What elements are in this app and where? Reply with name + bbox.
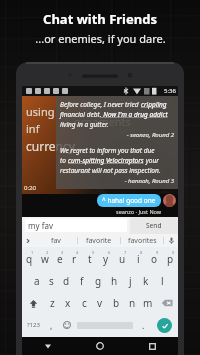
staticText: 8 xyxy=(140,250,143,255)
staticText: . xyxy=(142,319,145,331)
button[interactable]: fav xyxy=(34,234,77,247)
staticText: y xyxy=(103,252,109,266)
staticText: u xyxy=(119,252,126,266)
staticText: 0 xyxy=(172,250,175,255)
staticText: living in a gutter. xyxy=(60,120,109,129)
button[interactable]: s xyxy=(44,271,59,291)
button[interactable]: Back xyxy=(22,337,74,355)
staticText: b xyxy=(113,296,120,310)
button[interactable]: Profile photo xyxy=(163,194,176,207)
staticText: 4 xyxy=(76,250,79,255)
button[interactable]: e xyxy=(52,249,67,269)
staticText: 9 xyxy=(156,250,159,255)
staticText: 5 xyxy=(92,250,95,255)
staticText: h xyxy=(111,274,118,288)
button[interactable]: h xyxy=(106,271,122,291)
staticText: p xyxy=(167,252,174,266)
button[interactable]: u xyxy=(114,249,130,269)
button[interactable]: favorite xyxy=(78,234,120,247)
staticText: s xyxy=(49,274,54,288)
button[interactable]: c xyxy=(76,293,92,313)
staticText: crippling xyxy=(141,100,167,109)
staticText: financial debt xyxy=(60,110,100,119)
button[interactable]: t xyxy=(82,249,98,269)
staticText: , xyxy=(50,319,53,331)
button[interactable]: v xyxy=(92,293,108,313)
button[interactable]: . xyxy=(136,315,151,335)
staticText: ^ haha! good one xyxy=(102,196,156,205)
staticText: t xyxy=(88,252,92,266)
button[interactable]: f xyxy=(74,271,90,291)
staticText: currency xyxy=(26,138,75,154)
staticText: inf xyxy=(26,121,40,136)
button[interactable]: , xyxy=(44,315,59,335)
staticText: c xyxy=(82,296,87,310)
button[interactable]: Voice input xyxy=(164,234,178,247)
staticText: r xyxy=(72,252,77,266)
button[interactable]: Expand suggestions xyxy=(22,234,34,247)
staticText: 2 xyxy=(46,250,49,255)
staticText: Chat with Friends xyxy=(43,10,157,28)
button[interactable]: Home xyxy=(74,337,126,355)
staticText: w xyxy=(41,252,49,266)
staticText: z xyxy=(50,296,55,310)
button[interactable]: q xyxy=(22,249,37,269)
staticText: n xyxy=(129,296,136,310)
staticText: - hannah, Round 3 xyxy=(60,177,174,185)
button[interactable]: g xyxy=(90,271,106,291)
staticText: 5:36 xyxy=(164,87,176,95)
button[interactable]: Emoji xyxy=(59,315,74,335)
staticText: your xyxy=(144,156,159,165)
staticText: m xyxy=(143,296,153,310)
button[interactable]: Shift xyxy=(22,293,44,313)
button[interactable]: p xyxy=(162,249,178,269)
button[interactable]: i xyxy=(130,249,146,269)
staticText: - seanzo, Round 2 xyxy=(60,131,174,139)
staticText: 1 xyxy=(31,250,34,255)
button[interactable]: Enter xyxy=(151,315,178,335)
button[interactable]: o xyxy=(146,249,162,269)
staticText: ?123 xyxy=(27,321,40,329)
button[interactable]: Send xyxy=(130,217,178,234)
button[interactable]: ?123 xyxy=(22,315,44,335)
button[interactable]: n xyxy=(124,293,140,313)
button[interactable]: my fav xyxy=(25,219,127,232)
staticText: 7 xyxy=(124,250,127,255)
staticText: 0:20 xyxy=(24,184,36,192)
button[interactable]: ^ haha! good one xyxy=(97,194,161,207)
staticText: f xyxy=(80,274,84,288)
staticText: cum-spitting Velociraptors xyxy=(68,156,144,165)
staticText: ...or enemies, if you dare. xyxy=(35,31,166,46)
staticText: . Now I'm a drug addict xyxy=(100,110,168,119)
button[interactable]: b xyxy=(108,293,124,313)
staticText: to xyxy=(60,156,68,165)
button[interactable]: k xyxy=(138,271,154,291)
button[interactable]: Backspace xyxy=(156,293,178,313)
button[interactable]: z xyxy=(44,293,60,313)
button[interactable]: w xyxy=(37,249,52,269)
staticText: e xyxy=(57,252,63,266)
staticText: fav xyxy=(51,236,61,246)
staticText: We regret to inform you that due xyxy=(60,146,155,155)
button[interactable]: x xyxy=(60,293,76,313)
staticText: d xyxy=(63,274,70,288)
button[interactable]: m xyxy=(140,293,156,313)
staticText: x xyxy=(65,296,71,310)
staticText: v xyxy=(97,296,103,310)
button[interactable]: Recent apps xyxy=(126,337,178,355)
button[interactable]: d xyxy=(59,271,74,291)
staticText: favorites xyxy=(128,236,157,246)
staticText: j xyxy=(129,274,132,288)
staticText: favorite xyxy=(86,236,112,246)
staticText: 3 xyxy=(61,250,64,255)
button[interactable]: Space xyxy=(77,315,133,335)
button[interactable]: r xyxy=(67,249,82,269)
staticText: ornaments xyxy=(74,114,131,129)
button[interactable]: l xyxy=(154,271,170,291)
staticText: my fav xyxy=(28,220,53,231)
button[interactable]: y xyxy=(98,249,114,269)
button[interactable]: favorites xyxy=(121,234,163,247)
staticText: l xyxy=(161,274,164,288)
button[interactable]: j xyxy=(122,271,138,291)
button[interactable]: a xyxy=(29,271,44,291)
